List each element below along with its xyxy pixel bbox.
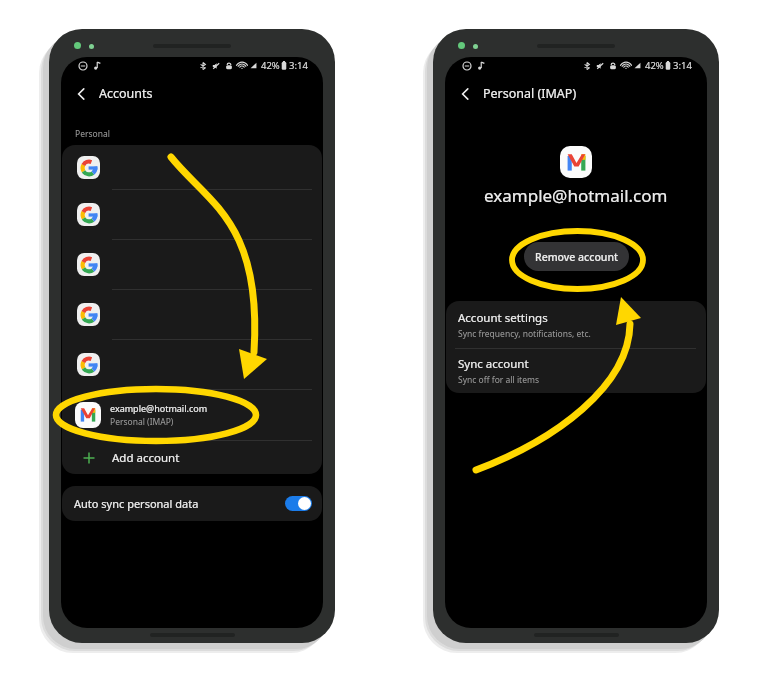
button[interactable]: Add account bbox=[82, 441, 322, 474]
staticText: example@hotmail.com bbox=[484, 184, 668, 207]
button[interactable]: Remove account bbox=[524, 242, 629, 271]
staticText: example@hotmail.com bbox=[110, 402, 208, 414]
button[interactable]: Back bbox=[454, 83, 476, 105]
button[interactable] bbox=[62, 239, 322, 289]
button[interactable] bbox=[62, 189, 322, 239]
button[interactable] bbox=[62, 289, 322, 339]
staticText: Account settings bbox=[458, 310, 548, 326]
staticText: 3:14 bbox=[289, 59, 308, 72]
button[interactable]: Sync account bbox=[446, 349, 706, 393]
other: Back bbox=[458, 87, 472, 101]
staticText: Remove account bbox=[535, 250, 619, 264]
button[interactable]: Back bbox=[70, 83, 92, 105]
other: Back bbox=[74, 87, 88, 101]
staticText: Personal (IMAP) bbox=[483, 85, 577, 102]
button[interactable]: Auto sync personal data bbox=[62, 486, 322, 521]
button[interactable]: Auto sync personal data toggle, on bbox=[285, 496, 312, 511]
staticText: 3:14 bbox=[673, 59, 692, 72]
staticText: Accounts bbox=[99, 85, 153, 102]
staticText: Sync frequency, notifications, etc. bbox=[458, 328, 591, 340]
staticText: 42% bbox=[645, 59, 664, 72]
staticText: Personal bbox=[75, 128, 110, 140]
button[interactable]: Account settings bbox=[446, 301, 706, 348]
staticText: Personal (IMAP) bbox=[110, 416, 174, 428]
button[interactable]: example@hotmail.com bbox=[62, 389, 322, 440]
button[interactable] bbox=[62, 145, 322, 189]
staticText: Sync account bbox=[458, 356, 529, 372]
staticText: 42% bbox=[261, 59, 280, 72]
button[interactable] bbox=[62, 339, 322, 389]
staticText: Auto sync personal data bbox=[74, 496, 199, 511]
staticText: Sync off for all items bbox=[458, 374, 539, 386]
staticText: Add account bbox=[112, 450, 180, 466]
